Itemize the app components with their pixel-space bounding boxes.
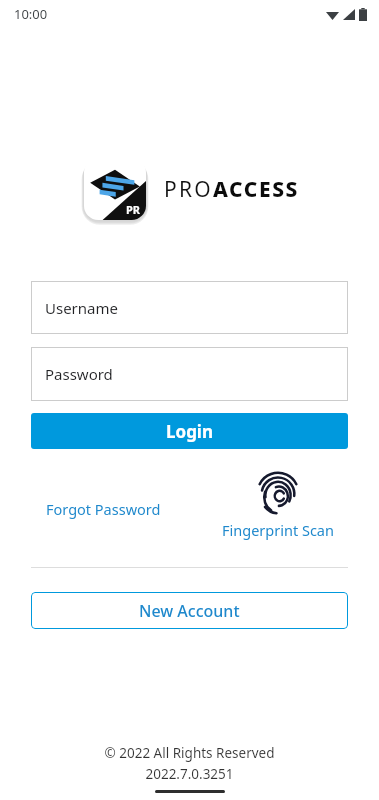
staticText: Forgot Password — [46, 499, 161, 519]
staticText: © 2022 All Rights Reserved — [104, 744, 275, 762]
button[interactable]: Password — [31, 347, 348, 401]
button[interactable]: Forgot Password — [46, 499, 161, 519]
staticText: Login — [166, 420, 214, 443]
button[interactable]: Username — [31, 281, 348, 334]
staticText: Fingerprint Scan — [222, 520, 334, 540]
staticText: Username — [45, 298, 118, 318]
staticText: Password — [45, 364, 113, 384]
button[interactable]: New Account — [31, 592, 348, 629]
staticText: New Account — [139, 600, 240, 622]
staticText: PRO — [164, 175, 213, 204]
staticText: 2022.7.0.3251 — [145, 765, 234, 783]
button[interactable]: Fingerprint Scan — [222, 471, 334, 540]
button[interactable]: Login — [31, 413, 348, 449]
staticText: 10:00 — [14, 5, 48, 23]
staticText: ACCESS — [213, 175, 300, 204]
staticText: PR — [126, 202, 141, 217]
